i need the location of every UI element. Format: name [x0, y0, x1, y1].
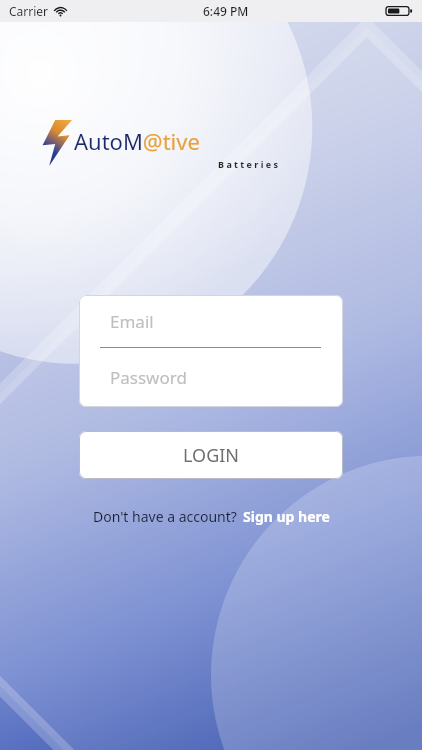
staticText: B a t t e r i e s — [74, 158, 422, 170]
staticText: Sign up here — [243, 507, 330, 526]
staticText: Password — [110, 366, 187, 389]
button[interactable]: LOGIN — [79, 431, 343, 479]
button[interactable]: Email — [79, 295, 343, 347]
staticText: Don't have a account? — [93, 507, 237, 526]
staticText: Email — [110, 310, 154, 333]
staticText: Carrier — [9, 3, 49, 19]
button[interactable]: Sign up here — [243, 507, 330, 526]
staticText: AutoM@tive — [74, 126, 200, 156]
other: Battery — [386, 5, 413, 17]
other: Wi-Fi signal — [54, 5, 67, 18]
staticText: LOGIN — [183, 443, 240, 468]
staticText: 6:49 PM — [203, 3, 249, 19]
button[interactable]: Password — [79, 348, 343, 407]
